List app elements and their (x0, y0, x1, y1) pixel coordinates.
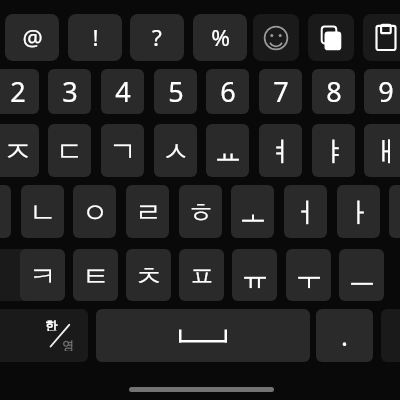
staticText: 6 (220, 73, 236, 110)
button[interactable]: Save (363, 14, 400, 61)
staticText: 2 (10, 73, 26, 110)
staticText: ㅛ (214, 135, 242, 170)
staticText: ㅓ (292, 196, 320, 231)
button[interactable]: ㄹ (126, 185, 169, 238)
staticText: ㅇ (81, 196, 109, 231)
button[interactable]: Symbols (0, 309, 53, 362)
button[interactable]: ㄷ (48, 124, 91, 177)
button[interactable]: ㅑ (312, 124, 355, 177)
button[interactable]: . (316, 309, 373, 362)
button[interactable]: Shift (0, 249, 48, 301)
staticText: ㅎ (187, 196, 215, 231)
button[interactable]: 3 (48, 69, 91, 114)
staticText: ㅡ (348, 260, 376, 295)
button[interactable]: ! (68, 14, 122, 61)
button[interactable]: ㅅ (154, 124, 197, 177)
button[interactable]: ㅌ (73, 249, 118, 301)
button[interactable]: ㅍ (179, 249, 224, 301)
staticText: ㅏ (345, 196, 373, 231)
staticText: . (341, 318, 348, 353)
button[interactable]: ㅕ (259, 124, 302, 177)
staticText: ㅠ (241, 260, 269, 295)
button[interactable]: ㅓ (284, 185, 327, 238)
button[interactable]: ㅗ (231, 185, 274, 238)
button[interactable]: ㅇ (73, 185, 116, 238)
button[interactable]: ㄱ (101, 124, 144, 177)
button[interactable]: ㅋ (20, 249, 65, 301)
button[interactable]: @ (5, 14, 59, 61)
button[interactable]: ㅊ (126, 249, 171, 301)
button[interactable]: ㅠ (232, 249, 277, 301)
staticText: ㅋ (29, 260, 57, 295)
button[interactable]: % (193, 14, 247, 61)
button[interactable]: ㅁ (0, 185, 11, 238)
button[interactable]: ㄴ (21, 185, 64, 238)
staticText: 8 (326, 73, 342, 110)
staticText: ㅊ (135, 260, 163, 295)
staticText: ㅐ (372, 135, 400, 170)
staticText: ㅕ (267, 135, 295, 170)
staticText: 7 (273, 73, 289, 110)
button[interactable]: ? (130, 14, 184, 61)
button[interactable]: ㅎ (179, 185, 222, 238)
staticText: ㅅ (162, 135, 190, 170)
staticText: 한 (45, 318, 58, 331)
staticText: 영 (62, 338, 74, 351)
staticText: ? (152, 22, 162, 53)
button[interactable]: 8 (312, 69, 355, 114)
button[interactable]: ㅡ (339, 249, 384, 301)
staticText: ㅑ (320, 135, 348, 170)
staticText: % (211, 22, 230, 53)
button[interactable]: 2 (0, 69, 39, 114)
button[interactable]: 9 (364, 69, 400, 114)
button[interactable]: 4 (101, 69, 144, 114)
staticText: 5 (168, 73, 184, 110)
staticText: ㄷ (56, 135, 84, 170)
staticText: @ (22, 22, 43, 53)
staticText: ㅈ (4, 135, 32, 170)
button[interactable]: ㅏ (337, 185, 380, 238)
staticText: 9 (378, 73, 394, 110)
button[interactable]: ㅐ (364, 124, 400, 177)
button[interactable]: Emoji (253, 14, 299, 61)
staticText: ㄱ (109, 135, 137, 170)
button[interactable]: ㅛ (206, 124, 249, 177)
staticText: ㅍ (188, 260, 216, 295)
button[interactable]: ㅜ (286, 249, 331, 301)
staticText: ! (92, 22, 99, 53)
button[interactable]: ㅣ (389, 185, 400, 238)
staticText: ㄹ (134, 196, 162, 231)
button[interactable]: Space (96, 309, 310, 362)
staticText: ㄴ (29, 196, 57, 231)
button[interactable]: 7 (259, 69, 302, 114)
staticText: 4 (115, 73, 131, 110)
button[interactable]: Korean English toggle (32, 309, 88, 362)
button[interactable]: Copy (308, 14, 354, 61)
button[interactable]: ㅈ (0, 124, 39, 177)
staticText: ㅗ (239, 196, 267, 231)
button[interactable]: 5 (154, 69, 197, 114)
button[interactable]: 6 (206, 69, 249, 114)
staticText: ㅌ (82, 260, 110, 295)
staticText: 3 (62, 73, 78, 110)
staticText: ㅜ (295, 260, 323, 295)
